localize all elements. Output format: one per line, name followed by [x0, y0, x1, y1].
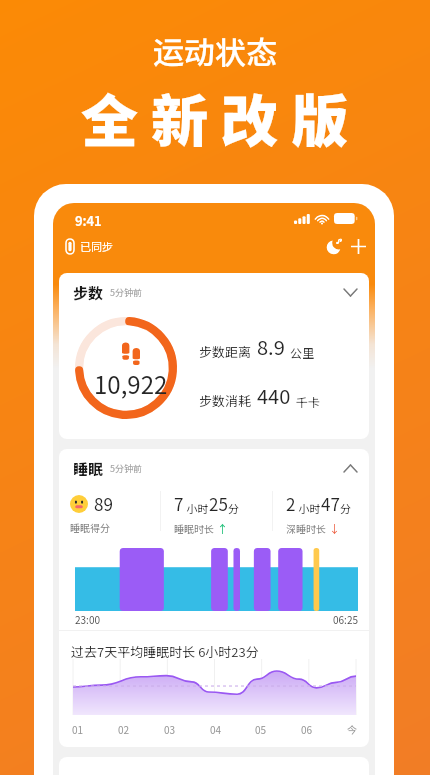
- staticText: 47: [321, 491, 340, 516]
- button[interactable]: Add: [348, 236, 368, 256]
- staticText: 公里: [290, 344, 315, 361]
- staticText: 06: [301, 722, 313, 736]
- staticText: 分: [228, 500, 239, 516]
- staticText: 04: [210, 722, 222, 736]
- staticText: 千卡: [296, 393, 321, 410]
- staticText: 运动状态: [153, 28, 277, 73]
- staticText: 深睡时长: [286, 521, 329, 535]
- staticText: 06:25: [333, 612, 358, 626]
- staticText: 已同步: [80, 238, 113, 254]
- staticText: 23:00: [75, 612, 100, 626]
- staticText: 10,922: [94, 366, 168, 401]
- staticText: 7: [174, 491, 184, 516]
- staticText: 步数距离: [199, 342, 252, 361]
- button[interactable]: 步数: [59, 273, 369, 312]
- staticText: 440: [257, 381, 291, 410]
- staticText: 过去7天平均睡眠时长 6小时23分: [71, 642, 259, 661]
- staticText: 5分钟前: [110, 462, 142, 475]
- staticText: 2: [286, 491, 296, 516]
- staticText: ↑: [217, 520, 228, 536]
- staticText: 小时: [296, 500, 321, 516]
- staticText: 睡眠得分: [70, 520, 110, 534]
- staticText: 25: [209, 491, 228, 516]
- staticText: 9:41: [75, 211, 102, 226]
- staticText: 睡眠时长: [174, 521, 217, 535]
- staticText: ↓: [329, 520, 340, 536]
- button[interactable]: Sleep sounds: [324, 236, 344, 256]
- staticText: 01: [72, 722, 84, 736]
- button[interactable]: 已同步: [63, 236, 116, 256]
- button[interactable]: 睡眠: [59, 449, 369, 488]
- staticText: 分: [340, 500, 351, 516]
- staticText: 睡眠: [73, 458, 104, 480]
- staticText: 今: [347, 722, 357, 736]
- staticText: 02: [118, 722, 130, 736]
- staticText: 步数: [73, 282, 104, 304]
- staticText: 步数消耗: [199, 391, 252, 410]
- staticText: 全 新 改 版: [81, 76, 349, 159]
- staticText: 8.9: [257, 332, 285, 361]
- staticText: 89: [94, 491, 113, 516]
- staticText: 5分钟前: [110, 286, 142, 299]
- staticText: 03: [164, 722, 176, 736]
- staticText: 05: [255, 722, 267, 736]
- staticText: 小时: [184, 500, 209, 516]
